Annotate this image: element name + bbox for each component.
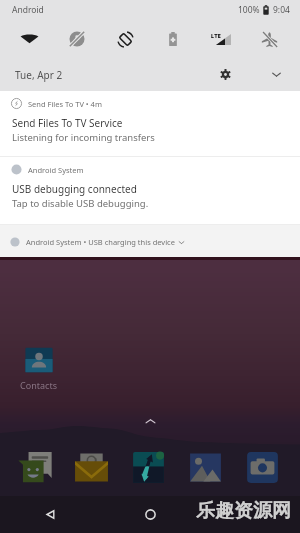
button[interactable]: Contacts (16, 343, 61, 391)
button[interactable]: Messaging (16, 449, 52, 485)
button[interactable]: Auto rotate (101, 20, 149, 58)
staticText: Contacts (20, 379, 57, 391)
staticText: 乐趣资源网 (196, 499, 291, 523)
button[interactable]: Airplane mode (245, 20, 293, 58)
button[interactable]: Do not disturb (53, 20, 101, 58)
button[interactable]: Send Files To TV • 4m (0, 91, 300, 156)
button[interactable]: Email (73, 449, 109, 485)
button[interactable]: Home (100, 496, 200, 533)
button[interactable]: Wi-Fi (5, 20, 53, 58)
button[interactable]: Photos (187, 449, 223, 485)
staticText: 9:04 (273, 4, 290, 16)
button[interactable]: Camera (244, 449, 280, 485)
staticText: 100% (238, 4, 260, 16)
staticText: Listening for incoming transfers (12, 131, 155, 144)
staticText: Tue, Apr 2 (15, 68, 63, 82)
staticText: Send Files To TV • 4m (28, 99, 102, 109)
staticText: Android System (28, 165, 84, 175)
button[interactable]: Mobile data (197, 20, 245, 58)
button[interactable]: Expand quick settings (264, 62, 289, 87)
staticText: Android (12, 4, 44, 16)
button[interactable]: File transfer (130, 449, 166, 485)
staticText: Send Files To TV Service (12, 116, 123, 130)
staticText: Tap to disable USB debugging. (12, 197, 149, 210)
staticText: Android System • USB charging this devic… (26, 237, 175, 247)
staticText: USB debugging connected (12, 182, 137, 196)
button[interactable]: Android System • USB charging this devic… (0, 225, 300, 258)
button[interactable]: Android System (0, 157, 300, 224)
button[interactable]: Back (0, 496, 100, 533)
button[interactable]: Open app drawer (139, 410, 161, 432)
button[interactable]: Settings (213, 62, 238, 87)
button[interactable]: Recent apps (200, 496, 300, 533)
button[interactable]: Battery saver (149, 20, 197, 58)
